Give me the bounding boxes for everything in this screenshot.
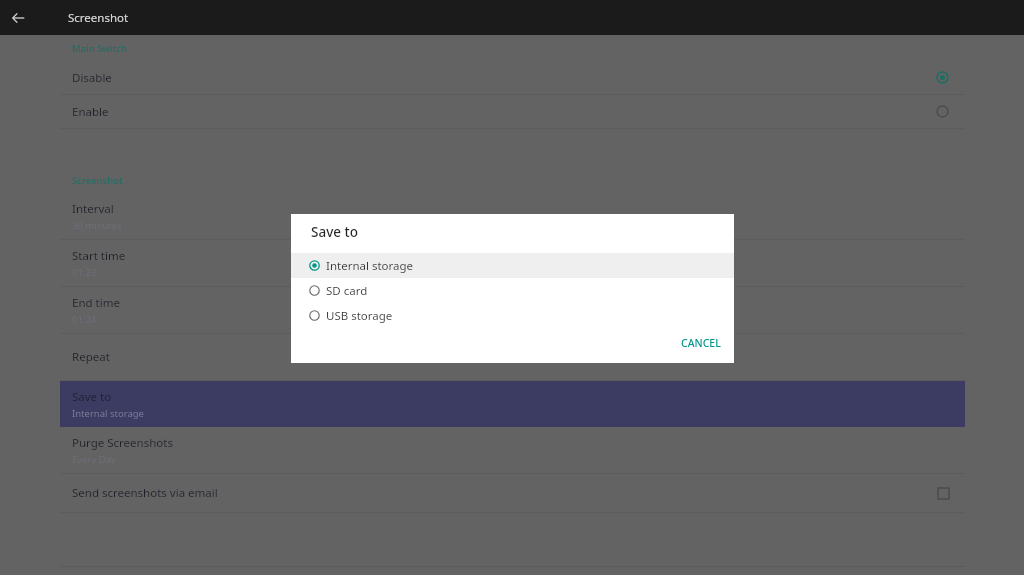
staticText: Disable — [72, 70, 112, 86]
button[interactable]: Interval — [0, 193, 1024, 239]
staticText: Screenshot — [68, 10, 129, 26]
staticText: SD card — [326, 283, 368, 299]
staticText: Repeat — [72, 349, 110, 365]
staticText: CANCEL — [681, 336, 721, 350]
button[interactable]: Start time — [0, 240, 1024, 286]
staticText: Save to — [311, 223, 358, 241]
button[interactable]: End time — [0, 287, 1024, 333]
staticText: Internal storage — [326, 258, 414, 274]
staticText: USB storage — [326, 308, 393, 324]
button[interactable]: Internal storage — [291, 253, 734, 278]
staticText: Purge Screenshots — [72, 435, 173, 451]
staticText: Screenshot — [72, 174, 123, 187]
button[interactable]: SD card — [291, 278, 734, 303]
button[interactable]: Purge Screenshots — [0, 427, 1024, 473]
staticText: Enable — [72, 104, 109, 120]
staticText: 01:23 — [72, 266, 97, 279]
staticText: Main Switch — [72, 42, 127, 55]
staticText: End time — [72, 295, 120, 311]
staticText: Send screenshots via email — [72, 485, 218, 501]
staticText: 01:24 — [72, 313, 97, 326]
staticText: Start time — [72, 248, 126, 264]
staticText: Every Day — [72, 453, 116, 466]
button[interactable]: Disable — [0, 61, 1024, 94]
button[interactable]: Back — [0, 0, 35, 35]
button[interactable]: CANCEL — [668, 328, 734, 358]
staticText: Internal storage — [72, 407, 144, 420]
staticText: 30 minutes — [72, 219, 122, 232]
staticText: Interval — [72, 201, 114, 217]
button[interactable]: USB storage — [291, 303, 734, 328]
staticText: Save to — [72, 389, 112, 405]
button[interactable]: Send screenshots via email — [0, 474, 1024, 512]
button[interactable]: Repeat — [0, 334, 1024, 380]
